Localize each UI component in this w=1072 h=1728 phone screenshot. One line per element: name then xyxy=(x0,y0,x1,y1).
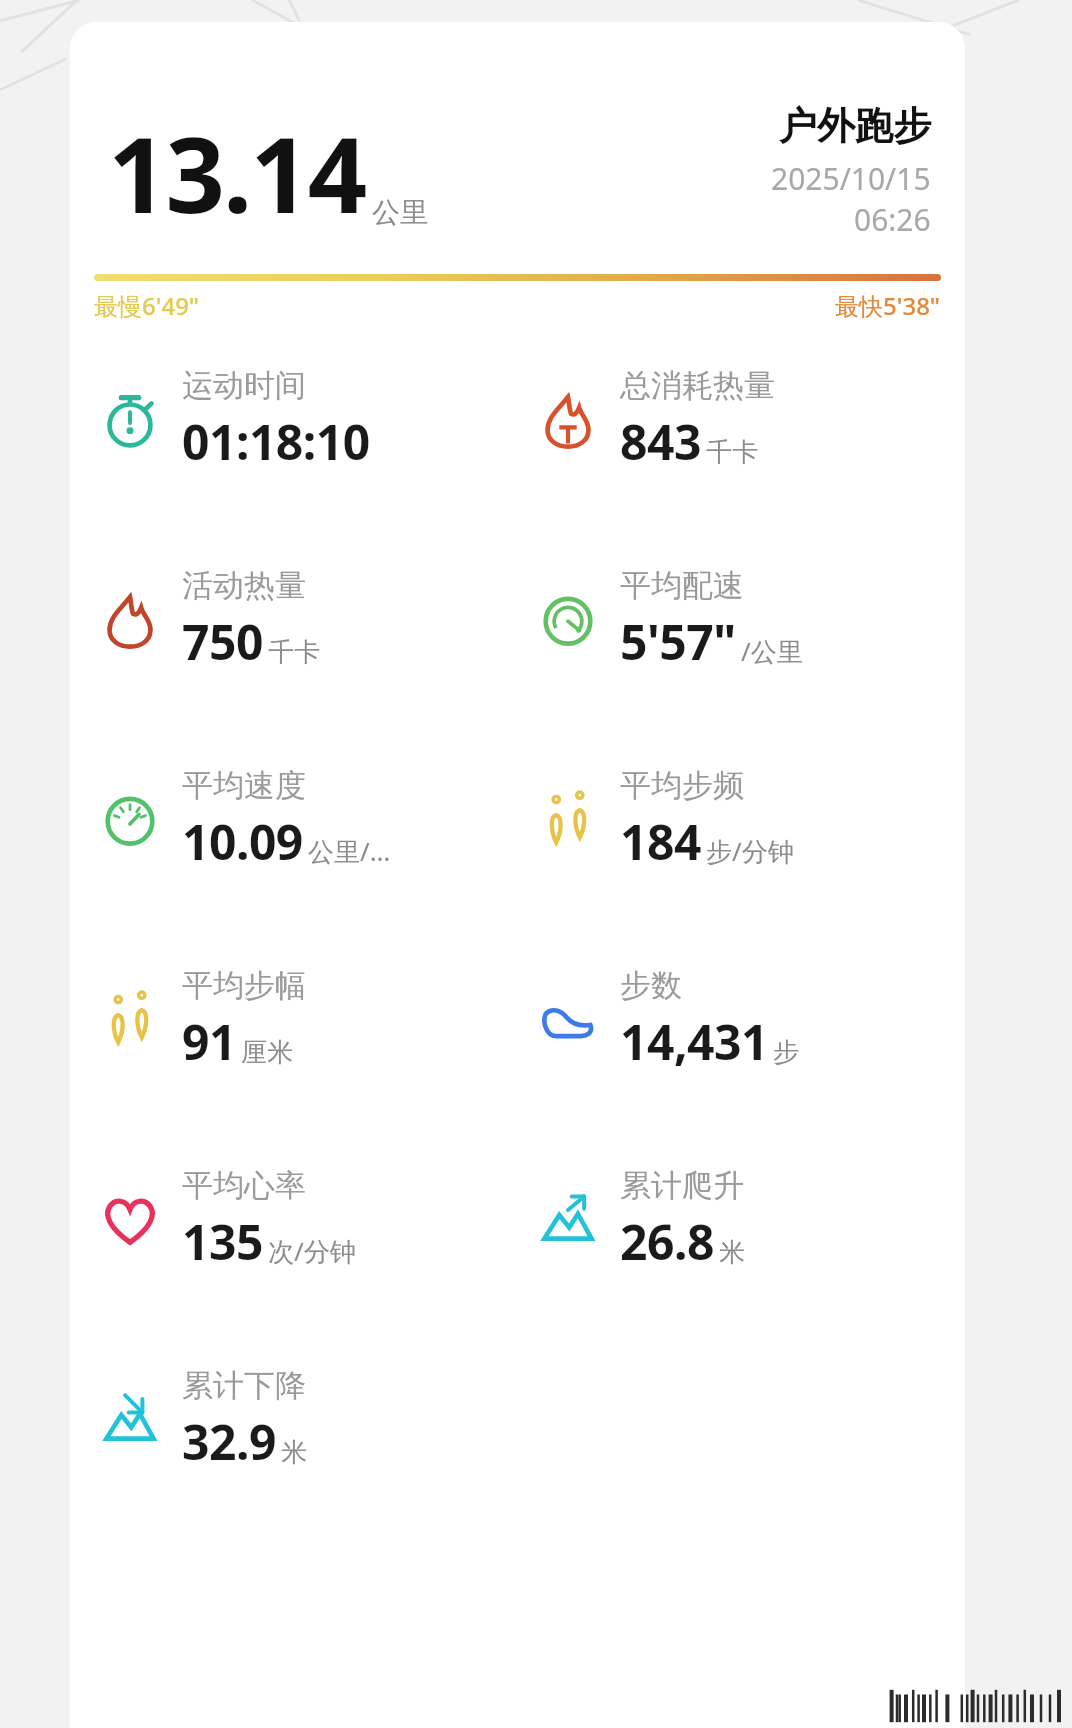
staticText: 平均心率 xyxy=(182,1166,306,1205)
staticText: 公里/… xyxy=(308,833,391,869)
staticText: 5'57" xyxy=(620,609,736,674)
staticText: 13.14 xyxy=(108,102,366,244)
staticText: 平均步频 xyxy=(620,766,744,805)
button[interactable]: 活动热量 xyxy=(88,566,526,674)
button[interactable]: 平均速度 xyxy=(88,766,526,874)
button[interactable]: 平均心率 xyxy=(88,1166,526,1274)
button[interactable]: 总消耗热量 xyxy=(526,366,965,474)
staticText: 843 xyxy=(620,409,701,474)
button[interactable]: 平均步幅 xyxy=(88,966,526,1074)
staticText: 活动热量 xyxy=(182,566,306,605)
staticText: 750 xyxy=(182,609,263,674)
staticText: 2025/10/15 xyxy=(771,158,931,199)
staticText: 总消耗热量 xyxy=(620,366,775,405)
button[interactable]: 平均配速 xyxy=(526,566,965,674)
staticText: 32.9 xyxy=(182,1409,276,1474)
button[interactable]: 运动时间 xyxy=(88,366,526,474)
staticText: 最慢6'49" xyxy=(94,289,200,322)
staticText: 次/分钟 xyxy=(268,1233,356,1269)
staticText: 01:18:10 xyxy=(182,409,370,474)
button[interactable]: 平均步频 xyxy=(526,766,965,874)
staticText: 步数 xyxy=(620,966,682,1005)
staticText: 户外跑步 xyxy=(779,102,931,150)
staticText: 运动时间 xyxy=(182,366,306,405)
staticText: 步 xyxy=(773,1036,799,1069)
staticText: 平均速度 xyxy=(182,766,306,805)
staticText: 14,431 xyxy=(620,1009,768,1074)
staticText: /公里 xyxy=(741,633,803,669)
staticText: 26.8 xyxy=(620,1209,714,1274)
staticText: 米 xyxy=(719,1236,745,1269)
button[interactable]: 累计爬升 xyxy=(526,1166,965,1274)
staticText: 平均步幅 xyxy=(182,966,306,1005)
button[interactable]: 步数 xyxy=(526,966,965,1074)
staticText: 千卡 xyxy=(706,436,758,469)
staticText: 91 xyxy=(182,1009,236,1074)
staticText: 06:26 xyxy=(854,199,931,240)
button[interactable]: 累计下降 xyxy=(88,1366,526,1474)
staticText: 千卡 xyxy=(268,636,320,669)
staticText: 米 xyxy=(281,1436,307,1469)
staticText: 10.09 xyxy=(182,809,303,874)
staticText: 最快5'38" xyxy=(835,289,941,322)
staticText: 平均配速 xyxy=(620,566,744,605)
staticText: 135 xyxy=(182,1209,263,1274)
staticText: 厘米 xyxy=(241,1036,293,1069)
staticText: 公里 xyxy=(372,195,428,230)
staticText: 步/分钟 xyxy=(706,833,794,869)
staticText: 累计爬升 xyxy=(620,1166,744,1205)
staticText: 累计下降 xyxy=(182,1366,306,1405)
staticText: 184 xyxy=(620,809,701,874)
